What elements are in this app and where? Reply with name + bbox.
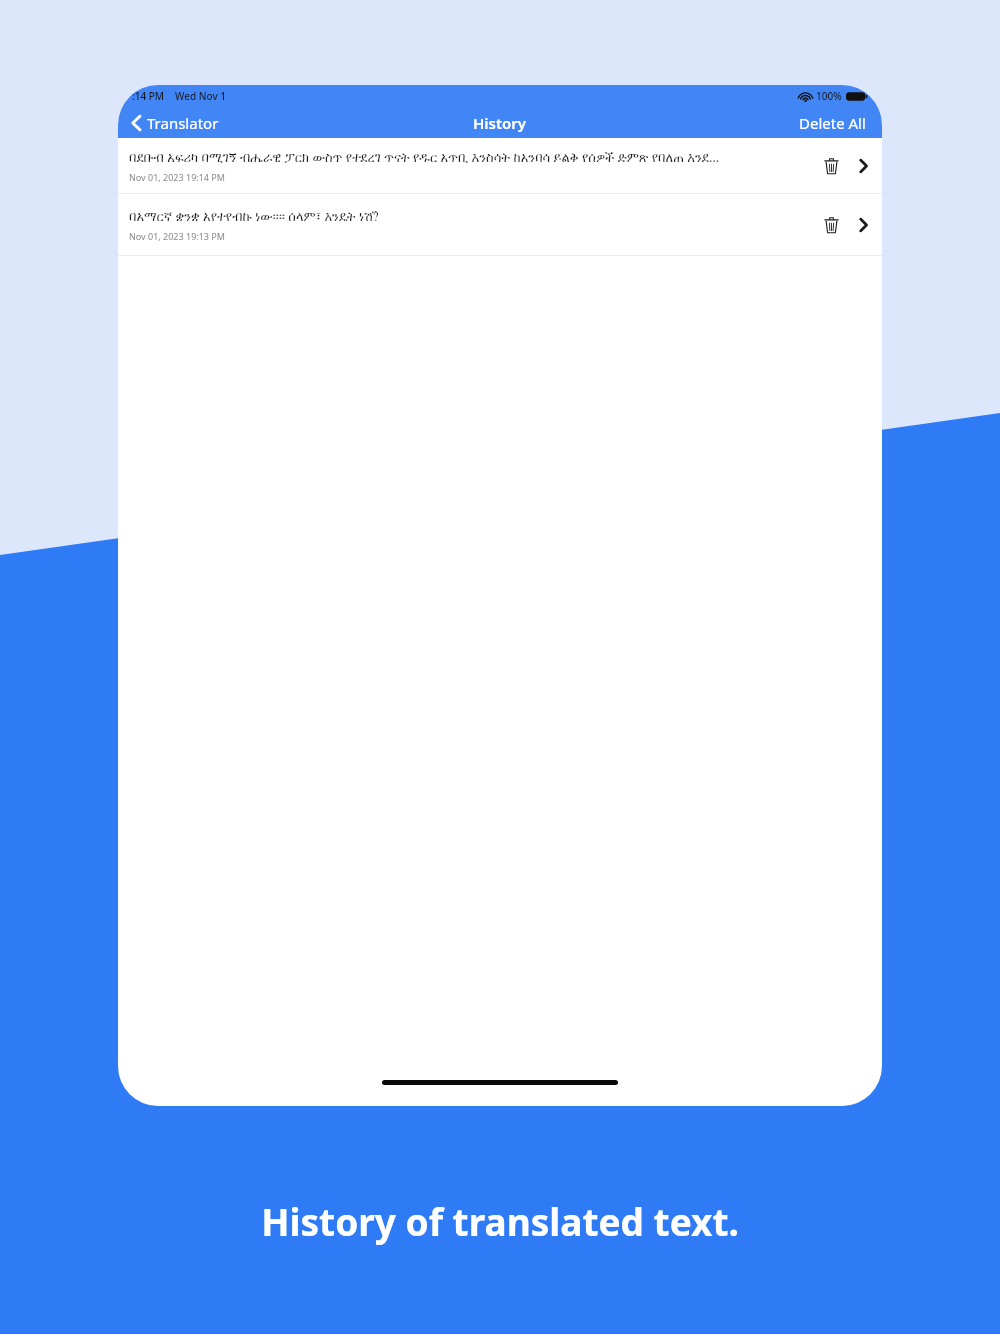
button[interactable]: በደቡብ አፍሪካ በሚገኝ ብሔራዊ ፓርክ ውስጥ የተደረገ ጥናት የዱ…: [118, 138, 882, 193]
staticText: History of translated text.: [0, 1196, 1000, 1246]
staticText: በደቡብ አፍሪካ በሚገኝ ብሔራዊ ፓርክ ውስጥ የተደረገ ጥናት የዱ…: [129, 148, 720, 166]
staticText: Translator: [147, 113, 219, 133]
button[interactable]: Open details: [850, 153, 876, 179]
staticText: Nov 01, 2023 19:13 PM: [129, 230, 225, 242]
button[interactable]: Delete: [816, 210, 846, 240]
staticText: 100%: [816, 89, 842, 103]
button[interactable]: Delete: [816, 151, 846, 181]
button[interactable]: Open details: [850, 212, 876, 238]
button[interactable]: በአማርኛ ቋንቋ አየተየብኩ ነው።። ሰላም፣ እንዴት ነሽ?፟: [118, 194, 882, 255]
button[interactable]: Translator: [127, 109, 223, 137]
button[interactable]: Delete All: [795, 109, 870, 137]
staticText: :14 PM: [132, 89, 165, 103]
staticText: Nov 01, 2023 19:14 PM: [129, 171, 225, 183]
staticText: በአማርኛ ቋንቋ አየተየብኩ ነው።። ሰላም፣ እንዴት ነሽ?፟: [129, 207, 379, 225]
staticText: Delete All: [799, 113, 866, 133]
staticText: Wed Nov 1: [175, 89, 227, 103]
staticText: History: [473, 113, 527, 133]
